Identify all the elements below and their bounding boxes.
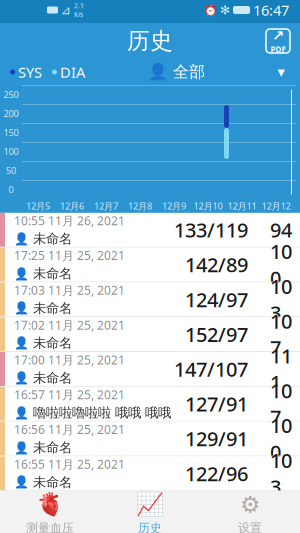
- staticText: ↗: [272, 27, 284, 44]
- staticText: 未命名: [33, 439, 72, 456]
- staticText: 100: [3, 145, 18, 158]
- button[interactable]: 👤: [148, 62, 205, 82]
- staticText: 👤: [14, 441, 29, 454]
- staticText: 嚕啦啦嚕啦啦 哦哦 哦哦: [33, 405, 171, 421]
- staticText: 全部: [173, 62, 205, 82]
- staticText: 16:57 11月 25, 2021: [14, 387, 125, 402]
- staticText: 147/107: [174, 356, 248, 382]
- staticText: 👤: [14, 406, 29, 420]
- staticText: 12月12: [261, 200, 290, 212]
- staticText: ⊿: [61, 3, 71, 17]
- staticText: 未命名: [33, 265, 72, 282]
- button[interactable]: ⚙: [200, 491, 300, 533]
- staticText: 12月5: [26, 200, 50, 212]
- staticText: 👤: [14, 475, 29, 489]
- staticText: 17:00 11月 25, 2021: [14, 352, 125, 368]
- staticText: ⏰: [204, 4, 217, 16]
- button[interactable]: 16:56 11月 25, 2021: [0, 422, 300, 456]
- staticText: 16:55 11月 25, 2021: [14, 456, 125, 472]
- staticText: 10:55 11月 26, 2021: [14, 213, 125, 228]
- button[interactable]: 10:55 11月 26, 2021: [0, 213, 300, 247]
- staticText: 未命名: [33, 300, 72, 317]
- staticText: 17:03 11月 25, 2021: [14, 282, 125, 298]
- staticText: 17:25 11月 25, 2021: [14, 247, 125, 263]
- staticText: SYS: [18, 62, 42, 82]
- staticText: 133/119: [174, 216, 248, 243]
- staticText: 94: [270, 216, 292, 243]
- staticText: 16:47: [253, 0, 289, 20]
- button[interactable]: 17:02 11月 25, 2021: [0, 317, 300, 351]
- staticText: 12月10: [193, 200, 222, 212]
- staticText: 12月8: [128, 200, 152, 212]
- staticText: 🫀: [36, 492, 64, 518]
- staticText: 12月7: [94, 200, 118, 212]
- staticText: 103: [270, 273, 292, 326]
- staticText: PDF: [270, 44, 285, 55]
- staticText: 0: [8, 183, 13, 196]
- staticText: 未命名: [33, 474, 72, 491]
- staticText: 107: [270, 308, 292, 361]
- staticText: 12月9: [162, 200, 186, 212]
- staticText: ▾: [277, 64, 284, 80]
- staticText: ⚙: [240, 492, 260, 517]
- staticText: ✻: [220, 3, 230, 17]
- staticText: 127/91: [185, 390, 248, 417]
- staticText: 12月6: [60, 200, 84, 212]
- button[interactable]: 17:25 11月 25, 2021: [0, 248, 300, 282]
- staticText: 17:02 11月 25, 2021: [14, 317, 125, 333]
- button[interactable]: 🫀: [0, 491, 100, 533]
- button[interactable]: 17:03 11月 25, 2021: [0, 282, 300, 316]
- staticText: 👤: [14, 232, 29, 246]
- staticText: 129/91: [185, 425, 248, 452]
- staticText: 设置: [238, 520, 262, 533]
- staticText: 107: [270, 377, 292, 430]
- staticText: 200: [3, 107, 18, 120]
- staticText: 👤: [14, 267, 29, 280]
- staticText: 历史: [127, 27, 173, 55]
- staticText: 124/97: [185, 286, 248, 313]
- staticText: 111: [270, 342, 292, 395]
- staticText: 250: [3, 88, 18, 101]
- staticText: DIA: [60, 62, 85, 82]
- button[interactable]: Filter options: [268, 59, 294, 85]
- staticText: 👤: [14, 371, 29, 385]
- staticText: 152/97: [185, 321, 248, 347]
- button[interactable]: 📈: [100, 491, 200, 533]
- staticText: 2.1 K/s: [74, 1, 84, 19]
- staticText: 12月11: [227, 200, 256, 212]
- staticText: 未命名: [33, 335, 72, 351]
- staticText: 未命名: [33, 231, 72, 247]
- staticText: 16:56 11月 25, 2021: [14, 421, 125, 437]
- staticText: 👤: [14, 336, 29, 350]
- staticText: 100: [270, 412, 292, 465]
- staticText: 100: [270, 238, 292, 291]
- staticText: 历史: [138, 521, 162, 533]
- staticText: 👤: [148, 63, 168, 81]
- staticText: 150: [3, 126, 18, 139]
- button[interactable]: 17:00 11月 25, 2021: [0, 352, 300, 386]
- staticText: 测量血压: [26, 521, 74, 533]
- staticText: 122/96: [185, 460, 248, 487]
- button[interactable]: Export PDF: [256, 23, 300, 59]
- button[interactable]: 16:55 11月 25, 2021: [0, 456, 300, 490]
- staticText: 103: [270, 447, 292, 500]
- staticText: 142/89: [185, 251, 248, 278]
- button[interactable]: 16:57 11月 25, 2021: [0, 387, 300, 421]
- staticText: 未命名: [33, 370, 72, 386]
- staticText: 👤: [14, 301, 29, 315]
- staticText: 📈: [136, 492, 164, 518]
- staticText: 50: [6, 164, 16, 177]
